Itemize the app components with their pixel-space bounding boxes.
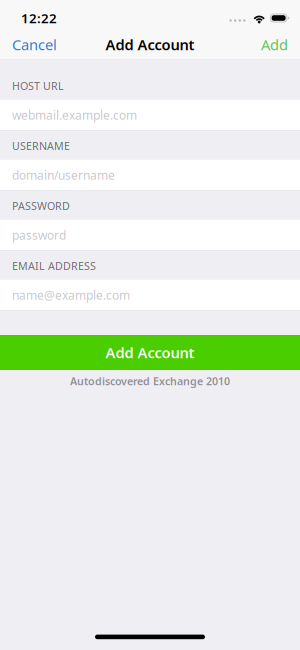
staticText: USERNAME xyxy=(12,139,70,153)
staticText: 12:22 xyxy=(21,9,57,27)
staticText: Cancel xyxy=(12,35,57,54)
staticText: Add Account xyxy=(105,35,194,54)
staticText: Add xyxy=(261,35,288,54)
staticText: webmail.example.com xyxy=(12,107,137,123)
staticText: Add Account xyxy=(105,343,194,362)
button[interactable]: Add Account xyxy=(0,335,300,370)
button[interactable]: name@example.com xyxy=(0,279,300,311)
staticText: name@example.com xyxy=(12,287,130,303)
button[interactable]: Add xyxy=(261,35,288,54)
button[interactable]: domain/username xyxy=(0,159,300,191)
staticText: password xyxy=(12,227,66,243)
button[interactable]: webmail.example.com xyxy=(0,99,300,131)
staticText: domain/username xyxy=(12,167,115,183)
staticText: PASSWORD xyxy=(12,199,70,213)
staticText: HOST URL xyxy=(12,79,64,93)
staticText: EMAIL ADDRESS xyxy=(12,259,96,273)
staticText: Autodiscovered Exchange 2010 xyxy=(70,374,230,388)
button[interactable]: password xyxy=(0,219,300,251)
button[interactable]: Cancel xyxy=(12,35,57,54)
